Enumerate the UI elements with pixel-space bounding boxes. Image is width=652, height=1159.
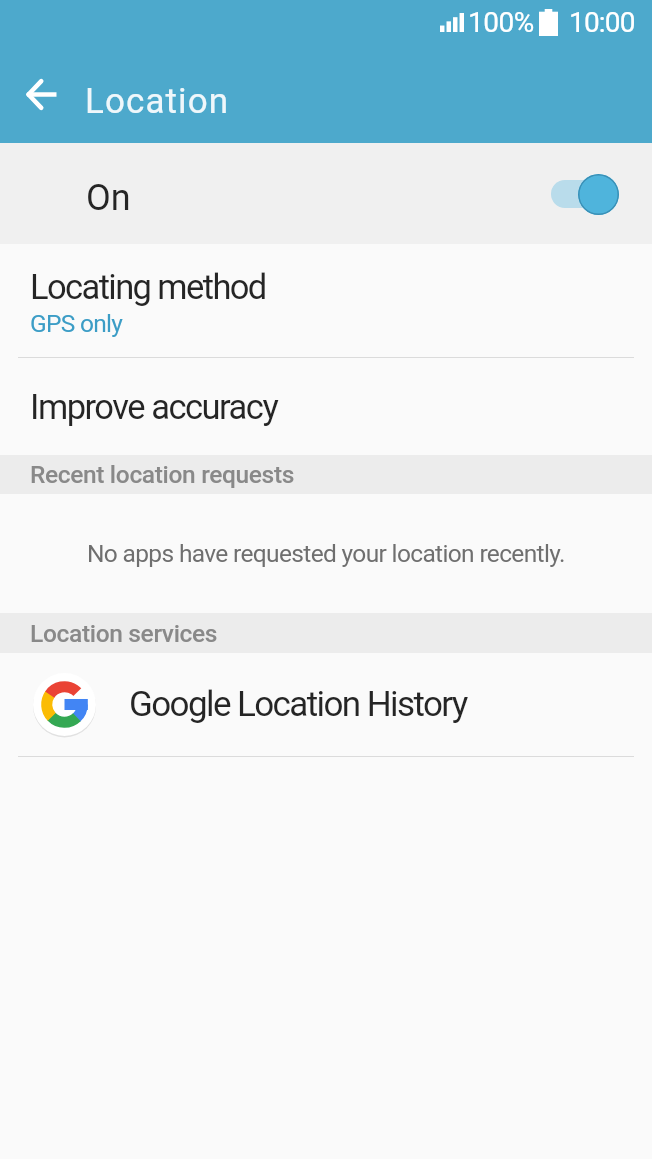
button[interactable] xyxy=(0,45,85,143)
button[interactable]: Locating method xyxy=(0,244,652,357)
staticText: Location xyxy=(85,81,230,122)
button[interactable]: Improve accuracy xyxy=(0,358,652,455)
staticText: On xyxy=(86,177,131,219)
staticText: Improve accuracy xyxy=(30,387,278,427)
staticText: No apps have requested your location rec… xyxy=(87,539,565,568)
button[interactable]: Google Location History xyxy=(0,653,652,756)
staticText: Locating method xyxy=(30,267,266,307)
staticText: 10:00 xyxy=(569,6,635,39)
staticText: Location services xyxy=(30,619,218,648)
button[interactable]: On xyxy=(0,143,652,244)
staticText: 100% xyxy=(468,6,534,39)
staticText: GPS only xyxy=(30,309,123,338)
button[interactable] xyxy=(551,173,619,215)
staticText: Recent location requests xyxy=(30,460,295,489)
staticText: Google Location History xyxy=(129,684,467,725)
